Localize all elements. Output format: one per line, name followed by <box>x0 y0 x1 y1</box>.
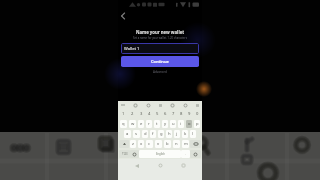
button[interactable]: Tool 0 <box>132 102 138 108</box>
staticText: 6 <box>164 111 167 117</box>
button[interactable]: Symbols <box>119 150 130 158</box>
button[interactable]: h <box>166 130 172 138</box>
staticText: n <box>175 141 178 147</box>
staticText: Advanced <box>153 70 167 74</box>
button[interactable]: Tool 5 <box>194 102 200 108</box>
button[interactable]: c <box>146 140 153 148</box>
button[interactable]: w <box>129 120 136 128</box>
staticText: w <box>131 121 135 127</box>
staticText: t <box>156 121 158 127</box>
button[interactable]: q <box>120 120 127 128</box>
button[interactable]: English <box>139 150 181 158</box>
staticText: p <box>196 121 199 127</box>
staticText: v <box>157 141 160 147</box>
button[interactable]: Emoji <box>130 150 139 158</box>
button[interactable]: 2 <box>129 110 136 118</box>
button[interactable]: Enter <box>190 150 201 158</box>
button[interactable]: t <box>154 120 160 128</box>
button[interactable]: Tool 4 <box>182 102 188 108</box>
staticText: a <box>126 131 129 137</box>
staticText: ?123 <box>122 152 128 156</box>
button[interactable]: a <box>124 130 131 138</box>
staticText: e <box>140 121 143 127</box>
staticText: 5 <box>156 111 159 117</box>
staticText: y <box>164 121 167 127</box>
staticText: 4 <box>148 111 151 117</box>
staticText: 3 <box>140 111 143 117</box>
button[interactable]: Shift <box>119 140 129 148</box>
button[interactable]: v <box>155 140 162 148</box>
button[interactable]: Back <box>119 11 128 20</box>
staticText: k <box>184 131 187 137</box>
staticText: c <box>148 141 151 147</box>
staticText: 0 <box>196 111 199 117</box>
button[interactable]: z <box>130 140 136 148</box>
staticText: r <box>148 121 150 127</box>
button[interactable]: o <box>186 120 192 128</box>
button[interactable]: x <box>138 140 144 148</box>
staticText: Set a name for your wallet. 1-20 charact… <box>118 36 202 40</box>
button[interactable]: 6 <box>162 110 168 118</box>
button[interactable]: 8 <box>178 110 184 118</box>
button[interactable]: i <box>178 120 184 128</box>
button[interactable]: g <box>158 130 164 138</box>
button[interactable]: 1 <box>120 110 127 118</box>
staticText: 2 <box>131 111 134 117</box>
button[interactable]: p <box>194 120 200 128</box>
button[interactable]: k <box>182 130 188 138</box>
staticText: l <box>192 131 194 137</box>
button[interactable]: Home <box>156 161 165 170</box>
button[interactable]: Advanced <box>118 69 202 75</box>
staticText: Wallet 1 <box>124 46 140 51</box>
button[interactable]: l <box>190 130 196 138</box>
staticText: i <box>180 121 182 127</box>
button[interactable]: Backspace <box>190 140 201 148</box>
button[interactable]: b <box>164 140 171 148</box>
button[interactable]: 5 <box>154 110 160 118</box>
button[interactable]: y <box>162 120 168 128</box>
staticText: 9 <box>188 111 191 117</box>
staticText: j <box>176 131 178 137</box>
button[interactable]: n <box>173 140 180 148</box>
button[interactable]: Tool 3 <box>169 102 175 108</box>
staticText: m <box>184 141 188 147</box>
button[interactable]: Expand toolbar <box>120 102 126 108</box>
button[interactable]: f <box>150 130 156 138</box>
staticText: b <box>166 141 169 147</box>
button[interactable]: 0 <box>194 110 200 118</box>
staticText: f <box>152 131 154 137</box>
button[interactable]: Wallet 1 <box>121 43 199 54</box>
staticText: o <box>188 121 191 127</box>
staticText: z <box>132 141 134 147</box>
button[interactable]: e <box>138 120 144 128</box>
button[interactable]: r <box>146 120 152 128</box>
staticText: Name your new wallet <box>118 29 202 35</box>
staticText: Continue <box>151 59 169 64</box>
button[interactable]: u <box>170 120 176 128</box>
button[interactable]: 7 <box>170 110 176 118</box>
button[interactable]: 9 <box>186 110 192 118</box>
button[interactable]: Continue <box>121 56 199 67</box>
staticText: English <box>156 152 165 156</box>
staticText: x <box>140 141 143 147</box>
staticText: . <box>185 152 186 156</box>
staticText: 8 <box>180 111 183 117</box>
button[interactable]: Tool 1 <box>145 102 151 108</box>
button[interactable]: 4 <box>146 110 152 118</box>
button[interactable]: s <box>133 130 140 138</box>
button[interactable]: j <box>174 130 180 138</box>
button[interactable]: 3 <box>138 110 144 118</box>
staticText: 1 <box>122 111 125 117</box>
staticText: s <box>135 131 138 137</box>
staticText: d <box>144 131 147 137</box>
staticText: 7 <box>172 111 175 117</box>
button[interactable]: Tool 2 <box>157 102 163 108</box>
button[interactable]: m <box>182 140 189 148</box>
staticText: u <box>172 121 175 127</box>
staticText: g <box>160 131 163 137</box>
button[interactable]: d <box>142 130 148 138</box>
staticText: q <box>122 121 125 127</box>
button[interactable]: Back <box>132 161 141 170</box>
button[interactable]: Recents <box>179 161 188 170</box>
